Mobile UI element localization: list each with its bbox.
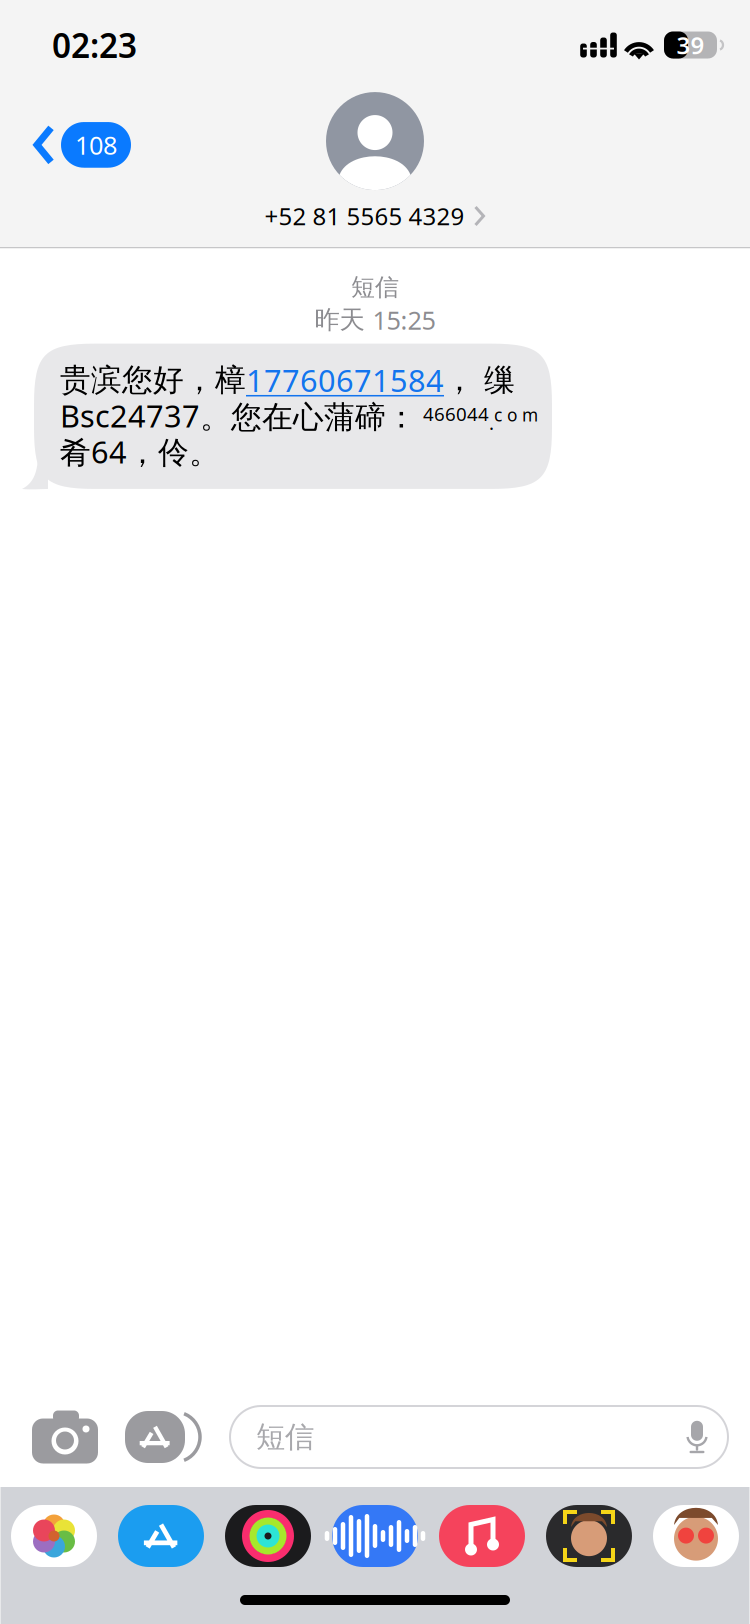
staticText: 39 [676,29,704,61]
staticText: 短信 [351,272,399,302]
button[interactable]: Camera [30,1410,100,1463]
staticText: 02:23 [52,23,137,67]
staticText: c o m [494,403,538,426]
staticText: 贵滨您好，樟 [60,361,246,399]
staticText: 108 [75,128,117,162]
staticText: 15:25 [372,303,435,337]
staticText: 肴64，伶。 [60,431,220,472]
staticText: ， [444,361,475,399]
button[interactable]: Photos [0,1500,107,1572]
button[interactable]: Fitness [214,1500,321,1572]
button[interactable]: App Store [107,1500,214,1572]
staticText: +52 81 5565 4329 [264,200,464,232]
staticText: 短信 [256,1419,314,1455]
button[interactable]: App Store [100,1410,206,1463]
staticText: 17760671584 [246,360,444,400]
button[interactable]: 108 [0,114,143,176]
staticText: Bsc24737。您在心蒲碲： [60,395,417,436]
staticText: 466044 [423,401,489,426]
button[interactable]: 短信 [230,1406,728,1468]
staticText: . [489,410,494,435]
button[interactable]: Audio [321,1500,428,1572]
staticText: 缫 [475,361,515,399]
button[interactable]: Memoji Stickers [642,1500,749,1572]
button[interactable]: Memoji [535,1500,642,1572]
button[interactable]: Music [428,1500,535,1572]
staticText: 昨天 [314,304,364,335]
button[interactable]: +52 81 5565 4329 [258,190,491,234]
